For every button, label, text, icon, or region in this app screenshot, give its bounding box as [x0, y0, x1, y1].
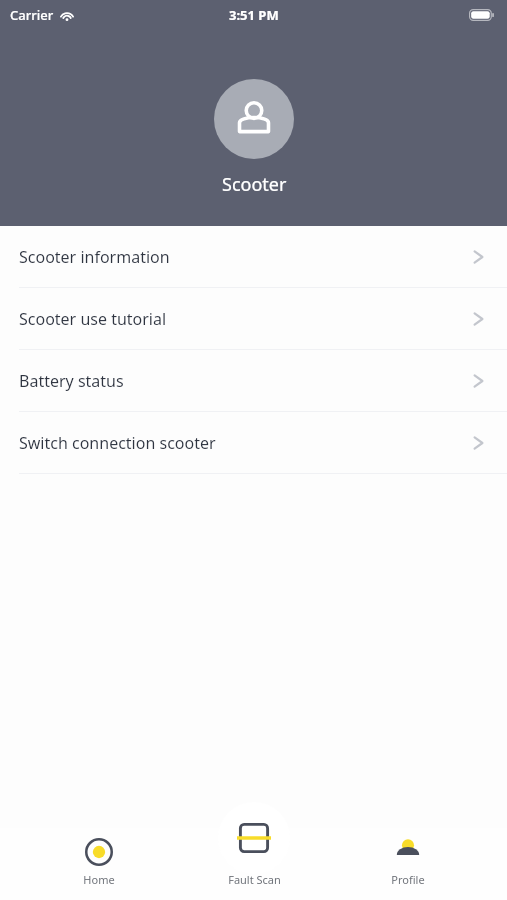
staticText: Scooter	[222, 172, 287, 197]
staticText: Carrier	[10, 6, 54, 24]
staticText: Fault Scan	[228, 872, 281, 887]
staticText: Battery status	[19, 370, 472, 392]
button[interactable]: Profile	[353, 828, 463, 900]
staticText: Switch connection scooter	[19, 432, 472, 454]
button[interactable]: Battery status	[0, 350, 507, 411]
button[interactable]: Scooter information	[0, 226, 507, 287]
button[interactable]: Home	[44, 828, 154, 900]
staticText: Scooter use tutorial	[19, 308, 472, 330]
staticText: Home	[83, 872, 115, 887]
button[interactable]: Scooter use tutorial	[0, 288, 507, 349]
button[interactable]: Switch connection scooter	[0, 412, 507, 473]
button[interactable]: Fault Scan	[199, 828, 309, 900]
staticText: Scooter information	[19, 246, 472, 268]
button[interactable]: Profile avatar	[214, 79, 294, 159]
button[interactable]: Fault Scan	[218, 802, 290, 874]
staticText: Profile	[391, 872, 425, 887]
staticText: 3:51 PM	[229, 6, 279, 24]
